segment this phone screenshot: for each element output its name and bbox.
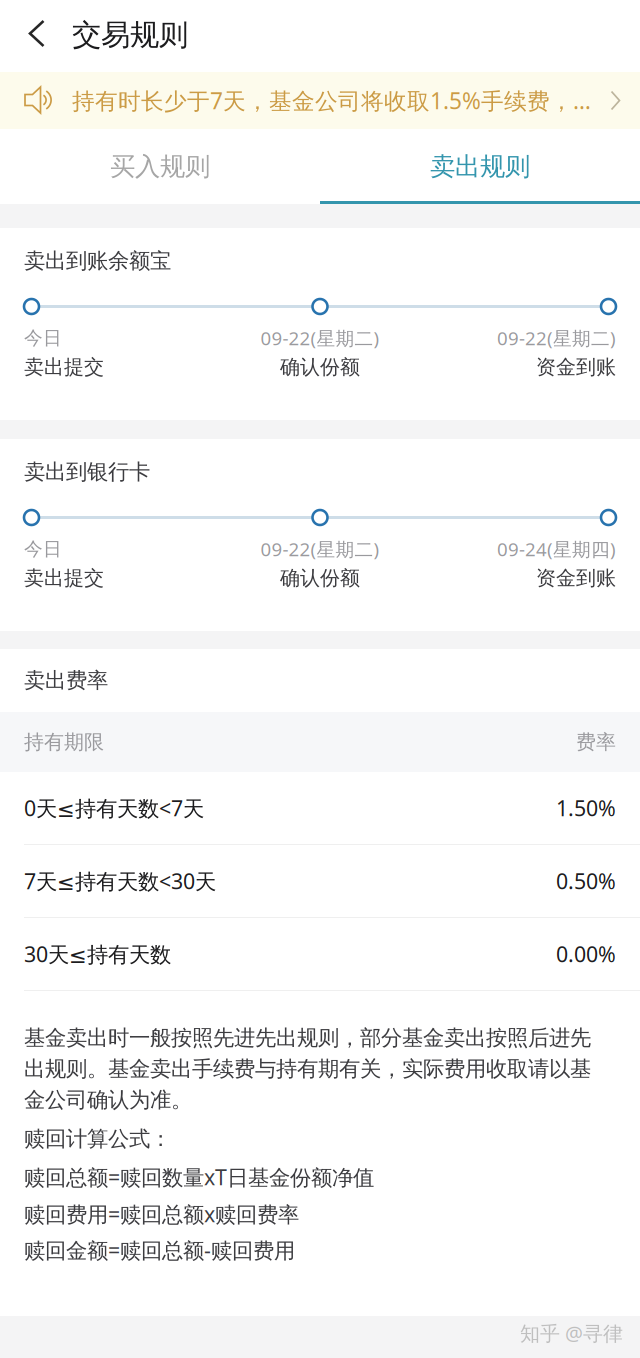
staticText: 资金到账 — [536, 355, 616, 379]
staticText: 0.50% — [556, 867, 616, 895]
staticText: 7天≤持有天数<30天 — [24, 867, 216, 895]
button[interactable]: 返回 — [0, 0, 72, 72]
staticText: 金公司确认为准。 — [24, 1087, 192, 1113]
staticText: 出规则。基金卖出手续费与持有期有关，实际费用收取请以基 — [24, 1056, 591, 1082]
staticText: 09-22(星期二) — [497, 326, 616, 350]
staticText: 卖出到银行卡 — [24, 459, 150, 485]
staticText: 今日 — [24, 326, 62, 349]
staticText: 交易规则 — [72, 17, 188, 53]
staticText: 卖出费率 — [24, 667, 108, 694]
button[interactable]: 买入规则 — [0, 129, 320, 204]
staticText: 卖出提交 — [24, 355, 104, 379]
staticText: 1.50% — [556, 794, 616, 822]
staticText: 确认份额 — [280, 355, 360, 379]
staticText: 卖出到账余额宝 — [24, 248, 171, 274]
staticText: 赎回总额=赎回数量xT日基金份额净值 — [24, 1163, 374, 1191]
staticText: 30天≤持有天数 — [24, 940, 171, 968]
staticText: 持有时长少于7天，基金公司将收取1.5%手续费，… — [72, 85, 591, 115]
staticText: 资金到账 — [536, 566, 616, 590]
staticText: 基金卖出时一般按照先进先出规则，部分基金卖出按照后进先 — [24, 1025, 591, 1051]
button[interactable]: 卖出规则 — [320, 129, 640, 204]
button[interactable]: 持有时长少于7天，基金公司将收取1.5%手续费，… — [0, 72, 640, 129]
staticText: 知乎 @寻律 — [520, 1320, 623, 1346]
staticText: 持有期限 — [24, 730, 104, 754]
staticText: 赎回金额=赎回总额-赎回费用 — [24, 1236, 295, 1264]
staticText: 确认份额 — [280, 566, 360, 590]
staticText: 卖出规则 — [430, 151, 530, 182]
staticText: 0.00% — [556, 940, 616, 968]
staticText: 今日 — [24, 537, 62, 560]
staticText: 卖出提交 — [24, 566, 104, 590]
staticText: 0天≤持有天数<7天 — [24, 794, 204, 822]
staticText: 09-24(星期四) — [497, 537, 616, 561]
staticText: 09-22(星期二) — [260, 537, 379, 561]
staticText: 09-22(星期二) — [260, 326, 379, 350]
staticText: 赎回计算公式： — [24, 1126, 171, 1152]
staticText: 费率 — [576, 730, 616, 754]
staticText: 赎回费用=赎回总额x赎回费率 — [24, 1200, 299, 1228]
staticText: 买入规则 — [110, 151, 210, 182]
